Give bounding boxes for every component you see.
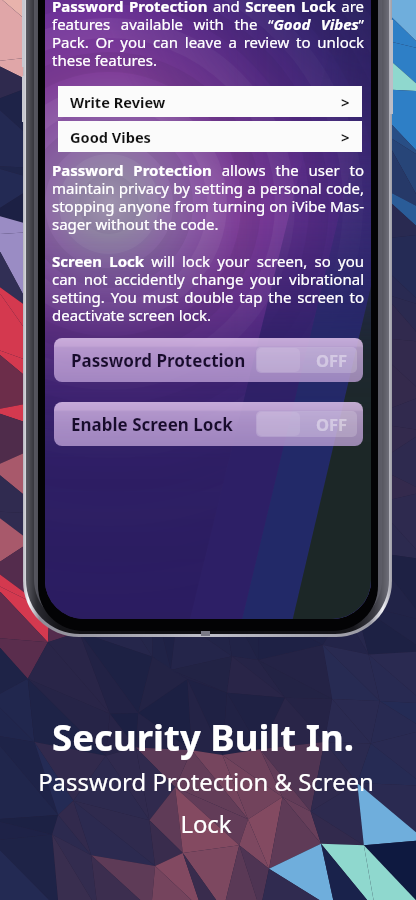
staticText: Password Protection allows the user to m…: [52, 160, 364, 235]
button[interactable]: Enable Screen Lock: [54, 402, 363, 446]
button[interactable]: Password Protection: [54, 338, 363, 382]
staticText: OFF: [316, 413, 348, 435]
staticText: Screen Lock will lock your screen, so yo…: [52, 251, 364, 326]
staticText: Enable Screen Lock: [71, 413, 233, 436]
staticText: Password Protection & Screen Lock: [20, 765, 392, 840]
staticText: >: [341, 127, 350, 147]
staticText: OFF: [316, 349, 348, 371]
staticText: Write Review: [70, 92, 166, 112]
button[interactable]: Good Vibes: [58, 121, 362, 152]
button[interactable]: Write Review: [58, 86, 362, 117]
staticText: Security Built In.: [0, 712, 411, 762]
staticText: >: [341, 92, 350, 112]
staticText: Good Vibes: [70, 127, 151, 147]
staticText: Password Protection: [71, 349, 246, 372]
staticText: Password Protection and Screen Lock are …: [52, 0, 364, 71]
